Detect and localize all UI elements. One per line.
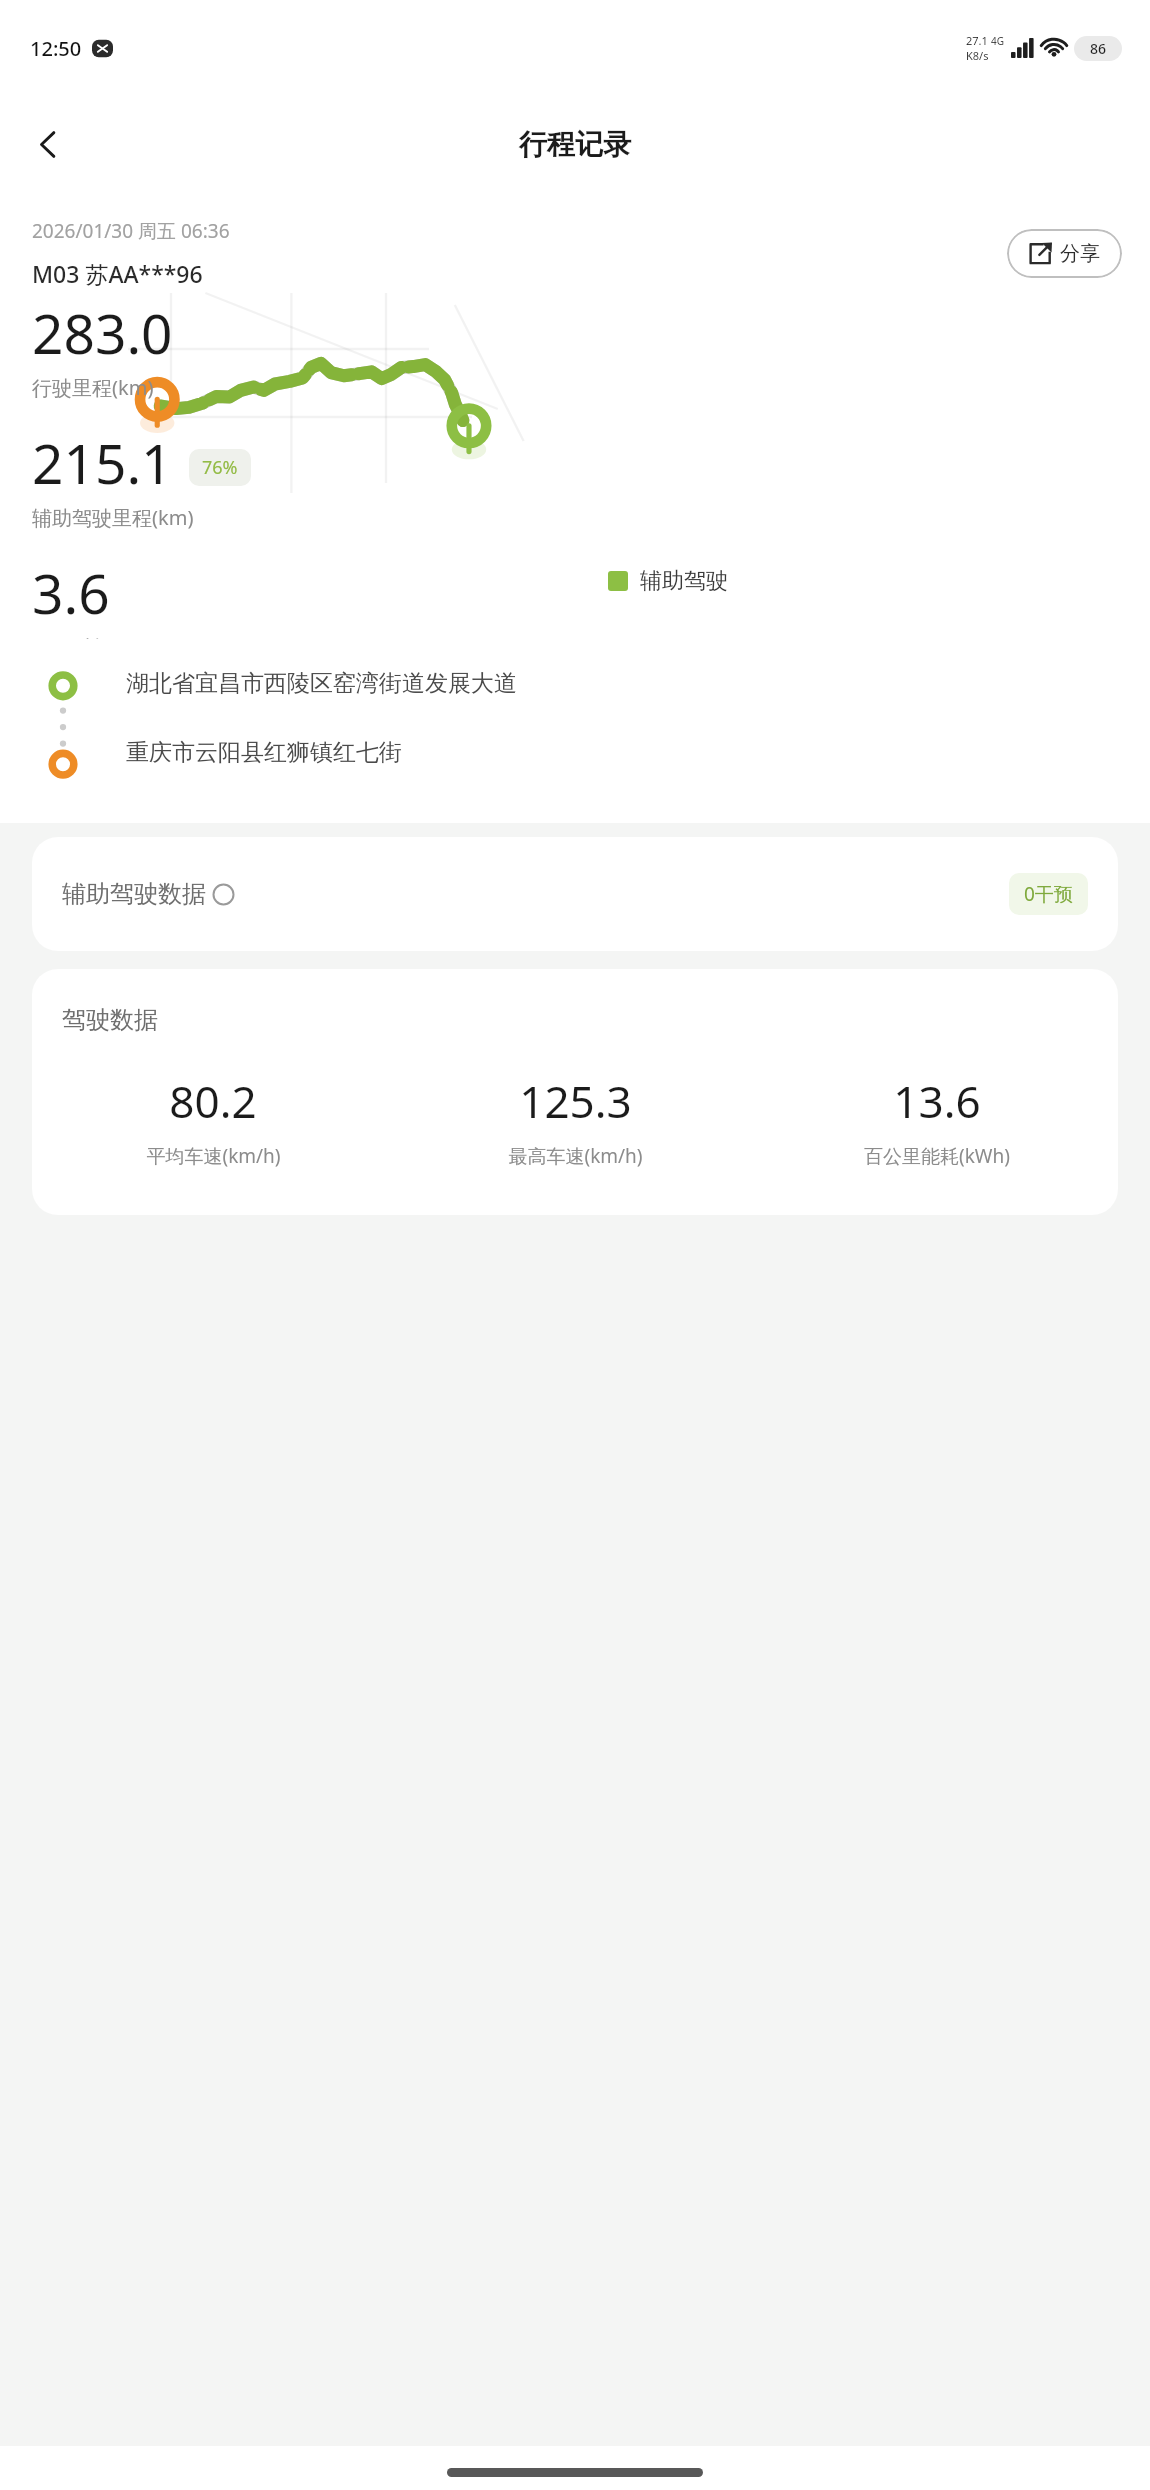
staticText: 86 bbox=[1090, 39, 1107, 58]
staticText: 283.0 bbox=[32, 295, 173, 370]
staticText: 辅助驾驶数据 bbox=[62, 879, 206, 909]
staticText: 百公里能耗(kWh) bbox=[864, 1143, 1010, 1169]
staticText: 行程时长(h) bbox=[32, 634, 137, 639]
staticText: 湖北省宜昌市西陵区窑湾街道发展大道 bbox=[126, 669, 517, 698]
staticText: 13.6 bbox=[893, 1071, 981, 1131]
button[interactable]: 辅助驾驶数据 bbox=[32, 837, 1118, 951]
staticText: 215.1 bbox=[32, 425, 173, 500]
staticText: 辅助驾驶 bbox=[640, 567, 728, 595]
button[interactable]: Back bbox=[16, 112, 80, 176]
button[interactable]: 分享 bbox=[1007, 229, 1122, 278]
staticText: 辅助驾驶里程(km) bbox=[32, 504, 194, 531]
staticText: 分享 bbox=[1060, 241, 1100, 266]
button[interactable]: 驾驶数据 bbox=[32, 969, 1118, 1215]
staticText: 2026/01/30 周五 06:36 bbox=[32, 218, 230, 244]
staticText: 最高车速(km/h) bbox=[508, 1143, 643, 1169]
staticText: 0干预 bbox=[1024, 881, 1073, 907]
staticText: 12:50 bbox=[30, 35, 82, 62]
staticText: 平均车速(km/h) bbox=[146, 1143, 281, 1169]
staticText: M03 苏AA***96 bbox=[32, 258, 203, 289]
staticText: 3.6 bbox=[32, 555, 110, 630]
staticText: 行程记录 bbox=[519, 127, 631, 162]
staticText: 行驶里程(km) bbox=[32, 374, 154, 401]
staticText: 4G bbox=[991, 34, 1004, 48]
staticText: 重庆市云阳县红狮镇红七街 bbox=[126, 738, 402, 767]
staticText: 驾驶数据 bbox=[62, 1005, 158, 1035]
staticText: 27.1 bbox=[966, 33, 988, 48]
staticText: 125.3 bbox=[519, 1071, 632, 1131]
staticText: 80.2 bbox=[169, 1071, 257, 1131]
staticText: 76% bbox=[202, 455, 238, 480]
staticText: K8/s bbox=[966, 48, 989, 63]
